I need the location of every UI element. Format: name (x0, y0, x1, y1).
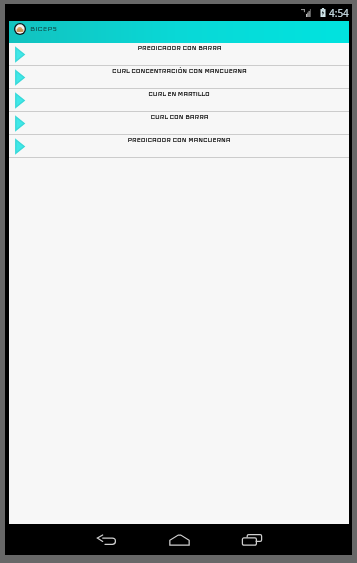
staticText: 4:54 (329, 6, 349, 20)
button[interactable]: CURL CONCENTRACIÓN CON MANCUERNA (9, 66, 349, 89)
staticText: CURL CONCENTRACIÓN CON MANCUERNA (112, 67, 247, 75)
staticText: PREDICADOR CON MANCUERNA (127, 136, 231, 144)
staticText: PREDICADOR CON MANCUERNA (127, 136, 231, 144)
button[interactable]: Recents (232, 524, 272, 555)
button[interactable]: Back (86, 524, 126, 555)
staticText: PREDICADOR CON BARRA (137, 44, 222, 52)
staticText: CURL CON BARRA (150, 113, 209, 121)
staticText: CURL CON BARRA (150, 113, 209, 121)
staticText: CURL CONCENTRACIÓN CON MANCUERNA (112, 67, 247, 75)
button[interactable]: CURL EN MARTILLO (9, 89, 349, 112)
staticText: CURL EN MARTILLO (148, 90, 210, 98)
button[interactable]: PREDICADOR CON MANCUERNA (9, 135, 349, 158)
staticText: CURL EN MARTILLO (148, 90, 210, 98)
staticText: PREDICADOR CON BARRA (137, 44, 222, 52)
button[interactable]: Home (159, 524, 199, 555)
button[interactable]: CURL CON BARRA (9, 112, 349, 135)
staticText: BICEPS (30, 24, 57, 33)
button[interactable]: PREDICADOR CON BARRA (9, 43, 349, 66)
